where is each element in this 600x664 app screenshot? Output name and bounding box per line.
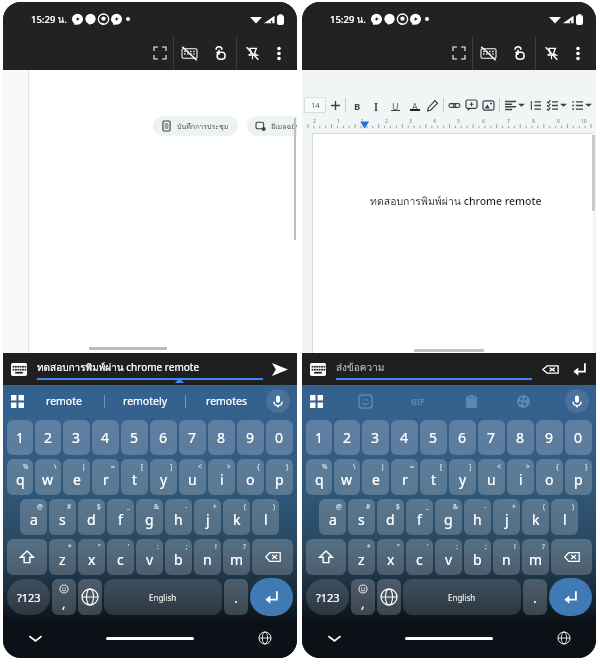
button[interactable]: Voice input [565,389,589,413]
button[interactable]: 8 [507,420,534,455]
button[interactable]: More options [566,36,590,70]
button[interactable]: o [536,459,563,495]
button[interactable]: l [252,499,279,535]
button[interactable]: 7 [179,420,206,455]
button[interactable]: อีเมลฉบับร่าง [247,116,297,136]
button[interactable]: Stickers [355,391,375,411]
button[interactable]: 9 [536,420,563,455]
button[interactable]: Insert image [483,100,494,111]
button[interactable]: Hide keyboard [324,628,344,648]
button[interactable]: 0 [266,420,293,455]
button[interactable]: j [194,499,221,535]
button[interactable]: f [406,499,433,535]
button[interactable]: t [121,459,148,495]
button[interactable]: . [523,579,547,615]
button[interactable]: 5 [420,420,447,455]
button[interactable]: q [306,459,332,495]
button[interactable]: ?123 [7,579,50,615]
button[interactable]: บันทึกการประชุม [153,116,238,136]
button[interactable]: Unpin [237,36,267,70]
button[interactable]: Shift [306,539,346,575]
button[interactable]: j [493,499,520,535]
button[interactable]: r [391,459,418,495]
button[interactable]: Apps [310,395,323,408]
button[interactable]: 9 [237,420,264,455]
button[interactable]: k [223,499,250,535]
button[interactable]: Language [255,628,275,648]
button[interactable]: GIF [407,390,429,412]
button[interactable]: Fullscreen [147,36,173,70]
button[interactable]: . [224,579,248,615]
button[interactable]: c [107,539,134,575]
button[interactable]: 5 [121,420,148,455]
button[interactable]: Change language [78,579,102,615]
button[interactable]: n [194,539,221,575]
button[interactable]: z [348,539,375,575]
button[interactable]: 7 [478,420,505,455]
button[interactable]: q [7,459,33,495]
button[interactable]: 14 [304,97,326,113]
button[interactable]: Comma and emoji [52,579,76,615]
button[interactable]: d [78,499,105,535]
button[interactable]: w [35,459,61,495]
button[interactable]: 3 [362,420,389,455]
button[interactable]: e [63,459,90,495]
button[interactable]: d [377,499,404,535]
button[interactable]: Enter [570,360,588,378]
button[interactable]: Backspace [551,539,592,575]
button[interactable]: s [348,499,375,535]
button[interactable]: Switch keyboard [310,363,326,376]
button[interactable]: c [406,539,433,575]
button[interactable]: Bulleted list [572,100,583,111]
button[interactable]: z [49,539,76,575]
button[interactable]: English [104,579,222,615]
button[interactable]: v [435,539,462,575]
button[interactable]: p [266,459,293,495]
button[interactable]: Fullscreen [446,36,472,70]
button[interactable]: 4 [391,420,418,455]
button[interactable]: Hide keyboard [25,628,45,648]
button[interactable]: remotes [186,394,266,408]
button[interactable]: a [20,499,47,535]
button[interactable]: x [78,539,105,575]
button[interactable]: Clipboard [461,391,481,411]
button[interactable]: Enter [250,578,293,616]
button[interactable]: remote [24,394,104,408]
button[interactable]: 6 [449,420,476,455]
button[interactable]: Themes [513,391,533,411]
button[interactable]: Backspace [252,539,293,575]
button[interactable]: Enter [549,578,592,616]
button[interactable]: remotely [105,394,185,408]
button[interactable]: Shift [7,539,47,575]
button[interactable]: h [165,499,192,535]
button[interactable]: Insert link [449,100,460,111]
button[interactable]: Voice input [266,389,290,413]
button[interactable]: More options [267,36,291,70]
button[interactable]: w [334,459,360,495]
button[interactable]: i [208,459,235,495]
button[interactable]: n [493,539,520,575]
button[interactable]: l [551,499,578,535]
button[interactable]: f [107,499,134,535]
button[interactable]: Touch mode [503,36,535,70]
button[interactable]: Checklist [547,100,558,111]
button[interactable]: Text colour [409,100,420,111]
button[interactable]: y [449,459,476,495]
button[interactable]: r [92,459,119,495]
button[interactable]: B [352,100,363,111]
button[interactable]: Change language [377,579,401,615]
button[interactable]: a [319,499,346,535]
button[interactable]: 4 [92,420,119,455]
button[interactable]: 2 [35,420,61,455]
button[interactable]: Alignment [505,100,516,111]
button[interactable]: k [522,499,549,535]
button[interactable]: m [522,539,549,575]
button[interactable]: x [377,539,404,575]
button[interactable]: o [237,459,264,495]
button[interactable]: 1 [7,420,33,455]
button[interactable]: t [420,459,447,495]
button[interactable]: Increase font size [330,100,341,111]
button[interactable]: Comment [466,100,477,111]
button[interactable]: Disable keyboard [174,36,204,70]
button[interactable]: b [165,539,192,575]
